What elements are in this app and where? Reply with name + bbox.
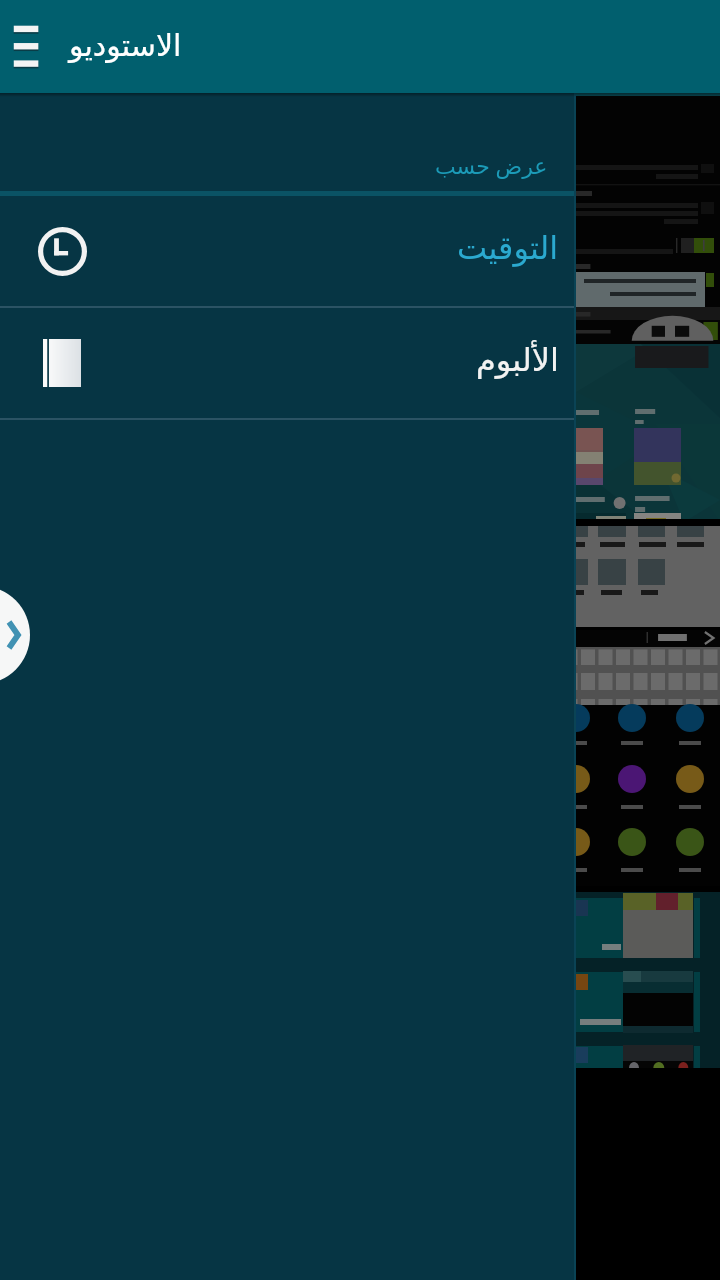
- staticText: الألبوم: [476, 341, 559, 378]
- staticText: عرض حسب: [435, 150, 548, 180]
- button[interactable]: Expand drawer: [0, 586, 30, 684]
- staticText: الاستوديو: [69, 28, 182, 63]
- button[interactable]: Open navigation menu: [0, 0, 52, 93]
- button[interactable]: الألبوم: [0, 308, 576, 418]
- button[interactable]: التوقيت: [0, 196, 576, 306]
- staticText: التوقيت: [457, 229, 559, 266]
